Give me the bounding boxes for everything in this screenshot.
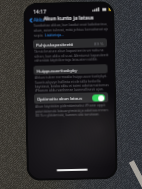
button[interactable]: Puhjuskapasiteetti <box>33 38 107 49</box>
staticText: 89 % <box>94 40 104 46</box>
button[interactable]: Back <box>28 15 46 24</box>
staticText: Optimoitu akun lataus <box>37 95 83 102</box>
staticText: Akun käyttöiän pidentämiseksi iPhone opp… <box>35 102 109 118</box>
staticText: sopia. <box>34 32 45 38</box>
staticText: 14:17 <box>33 8 46 16</box>
staticText: Akku <box>33 16 44 23</box>
button[interactable]: Lisätietoja… <box>45 32 64 37</box>
staticText: Lisätietoja… <box>45 32 64 37</box>
staticText: Puhjuskapasiteetti <box>36 41 74 48</box>
staticText: Akkusi tukee normaalia huippusuorituskyk… <box>35 73 109 93</box>
other: Back <box>29 18 33 23</box>
other: Optimoitu akun lataus <box>92 94 105 102</box>
staticText: Suodattaa akkua, kun laadut ovat ladatta… <box>34 21 108 33</box>
button[interactable]: Huippusuorituskyky <box>33 64 108 75</box>
button[interactable]: Optimoitu akun lataus <box>34 92 108 104</box>
staticText: Akun kunto ja lataus <box>43 14 94 23</box>
staticText: Huippusuorituskyky <box>36 67 78 74</box>
staticText: Tämä ilmaisee akun kapasiteetin verrattu… <box>34 47 108 63</box>
